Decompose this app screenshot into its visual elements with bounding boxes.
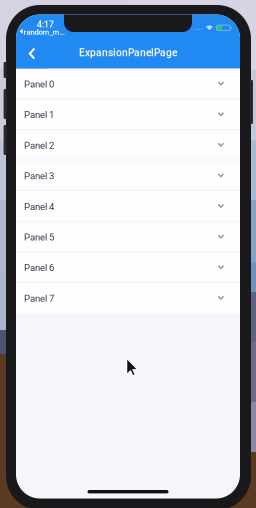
staticText: Panel 7	[24, 293, 54, 304]
staticText: Panel 0	[24, 79, 54, 90]
staticText: Panel 6	[24, 262, 54, 273]
staticText: ExpansionPanelPage	[79, 47, 177, 59]
button[interactable]: Panel 1	[16, 99, 240, 130]
button[interactable]: Panel 5	[16, 222, 240, 252]
staticText: Panel 2	[24, 140, 54, 151]
staticText: Panel 3	[24, 170, 54, 182]
staticText: random_m…	[24, 28, 65, 37]
button[interactable]: Panel 7	[16, 283, 240, 313]
button[interactable]: Back	[17, 37, 47, 70]
button[interactable]: Panel 2	[16, 130, 240, 160]
staticText: Panel 4	[24, 201, 54, 212]
staticText: Panel 1	[24, 109, 54, 120]
button[interactable]: Panel 4	[16, 191, 240, 222]
staticText: Panel 5	[24, 232, 54, 243]
button[interactable]: Panel 0	[16, 69, 240, 99]
button[interactable]: Panel 3	[16, 160, 240, 191]
button[interactable]: Panel 6	[16, 252, 240, 283]
staticText: 4:17	[37, 19, 54, 30]
